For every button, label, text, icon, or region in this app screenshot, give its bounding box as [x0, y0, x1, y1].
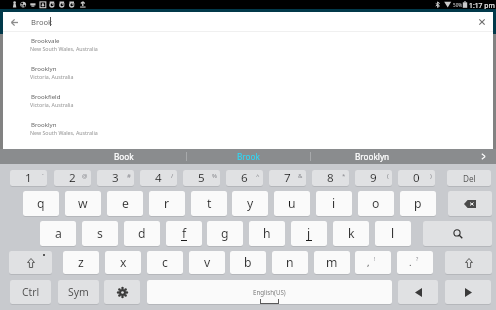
staticText: w — [78, 195, 88, 212]
button[interactable]: Sym — [58, 280, 99, 304]
other: Move cursor right — [445, 280, 491, 304]
button[interactable]: h — [249, 221, 285, 246]
button[interactable]: w — [65, 191, 101, 216]
button[interactable] — [104, 280, 140, 304]
button[interactable]: Del — [447, 170, 491, 186]
staticText: Brook — [237, 151, 260, 162]
staticText: l — [391, 225, 395, 242]
staticText: h — [263, 225, 271, 242]
staticText: 3 — [112, 170, 119, 186]
button[interactable]: Brookvale — [3, 32, 493, 60]
button[interactable]: r — [149, 191, 185, 216]
button[interactable]: English(US) — [147, 280, 392, 304]
button[interactable] — [445, 251, 492, 274]
staticText: * — [342, 172, 346, 180]
button[interactable]: t — [191, 191, 227, 216]
button[interactable]: 3 — [97, 170, 134, 186]
button[interactable]: Brooklyn — [3, 60, 493, 88]
button[interactable]: Back — [4, 14, 24, 30]
staticText: c — [162, 254, 168, 271]
staticText: ? — [416, 255, 419, 262]
staticText: u — [288, 195, 296, 212]
staticText: % — [212, 172, 217, 180]
staticText: English(US) — [253, 288, 286, 296]
button[interactable]: 5 — [183, 170, 220, 186]
button[interactable]: k — [333, 221, 369, 246]
staticText: Brooklyn — [31, 120, 57, 128]
staticText: 7 — [284, 170, 291, 186]
button[interactable]: p — [400, 191, 436, 216]
staticText: ` — [42, 172, 44, 180]
button[interactable]: Brooklyn — [310, 149, 434, 164]
button[interactable]: Brookfield — [3, 88, 493, 116]
button[interactable]: 6 — [226, 170, 263, 186]
staticText: 5 — [198, 170, 205, 186]
button[interactable]: a — [40, 221, 76, 246]
button[interactable] — [9, 251, 52, 274]
button[interactable]: . — [397, 251, 433, 274]
button[interactable]: m — [314, 251, 350, 274]
button[interactable]: More suggestions — [474, 149, 492, 164]
button[interactable]: 2 — [54, 170, 91, 186]
staticText: j — [307, 225, 311, 242]
staticText: 1 — [25, 170, 32, 186]
staticText: q — [37, 195, 45, 212]
button[interactable] — [448, 191, 492, 216]
button[interactable]: i — [316, 191, 352, 216]
staticText: Brooklyn — [355, 151, 390, 162]
button[interactable]: , — [355, 251, 391, 274]
button[interactable]: g — [207, 221, 243, 246]
staticText: Book — [114, 151, 134, 162]
button[interactable]: f — [166, 221, 202, 246]
staticText: / — [171, 172, 174, 180]
staticText: 4 — [155, 170, 162, 186]
staticText: ( — [387, 172, 389, 180]
staticText: z — [78, 254, 84, 271]
button[interactable]: c — [147, 251, 183, 274]
button[interactable]: n — [272, 251, 308, 274]
staticText: ^ — [256, 172, 260, 180]
button[interactable]: y — [232, 191, 268, 216]
button[interactable]: e — [107, 191, 143, 216]
staticText: 8 — [327, 170, 334, 186]
button[interactable]: Move cursor right — [445, 280, 491, 304]
staticText: ) — [430, 172, 432, 180]
button[interactable]: d — [124, 221, 160, 246]
button[interactable]: 9 — [355, 170, 392, 186]
button[interactable]: l — [375, 221, 411, 246]
button[interactable]: v — [189, 251, 225, 274]
button[interactable]: Brook — [186, 149, 310, 164]
button[interactable]: s — [82, 221, 118, 246]
button[interactable]: 0 — [398, 170, 435, 186]
button[interactable]: o — [358, 191, 394, 216]
button[interactable]: x — [105, 251, 141, 274]
staticText: # — [127, 172, 131, 180]
button[interactable]: u — [274, 191, 310, 216]
button[interactable]: b — [230, 251, 266, 274]
button[interactable]: j — [291, 221, 327, 246]
staticText: f — [182, 225, 187, 242]
staticText: Victoria, Australia — [30, 73, 74, 80]
button[interactable]: Brooklyn — [3, 116, 493, 144]
button[interactable]: Clear search — [473, 14, 491, 30]
staticText: & — [298, 172, 303, 180]
button[interactable]: q — [23, 191, 59, 216]
staticText: d — [138, 225, 146, 242]
staticText: Brook — [31, 17, 53, 27]
staticText: p — [414, 195, 422, 212]
staticText: 0 — [413, 170, 420, 186]
staticText: New South Wales, Australia — [30, 129, 98, 136]
button[interactable]: Move cursor left — [398, 280, 438, 304]
other: Move cursor left — [398, 280, 438, 304]
staticText: @ — [82, 172, 88, 180]
button[interactable]: 7 — [269, 170, 306, 186]
button[interactable]: Ctrl — [10, 280, 51, 304]
button[interactable]: 1 — [10, 170, 47, 186]
button[interactable]: Book — [62, 149, 186, 164]
staticText: 50% — [453, 2, 463, 8]
button[interactable]: z — [63, 251, 99, 274]
staticText: Del — [463, 173, 476, 184]
button[interactable]: 4 — [140, 170, 177, 186]
button[interactable]: 8 — [312, 170, 349, 186]
button[interactable] — [423, 221, 492, 246]
